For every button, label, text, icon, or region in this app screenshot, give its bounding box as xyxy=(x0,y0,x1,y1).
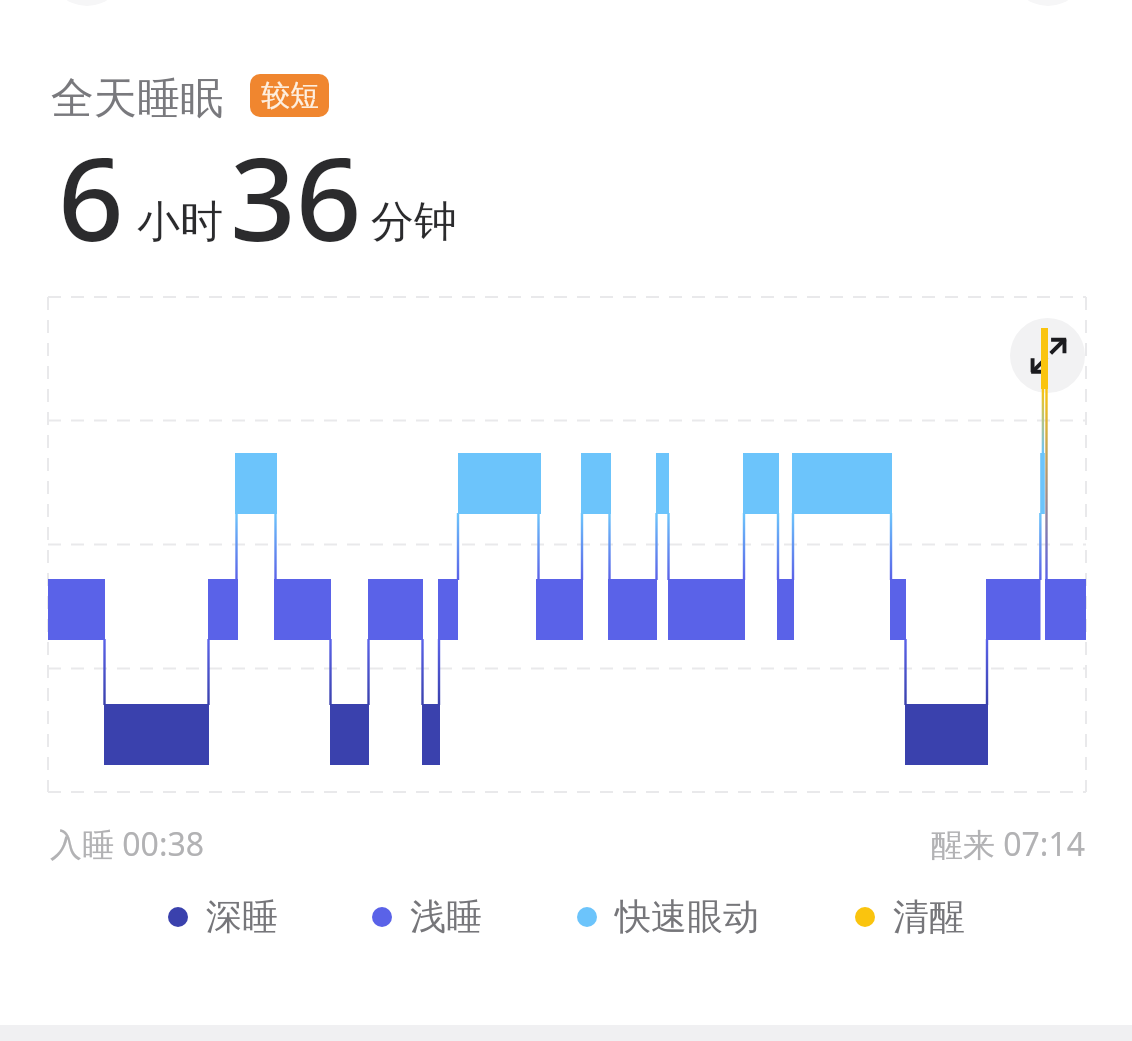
staticText: 清醒 xyxy=(893,894,965,939)
button[interactable]: 深睡 xyxy=(168,894,278,939)
staticText: 浅睡 xyxy=(410,894,482,939)
staticText: 较短 xyxy=(261,77,319,114)
staticText: 快速眼动 xyxy=(615,894,759,939)
staticText: 6 xyxy=(58,118,124,275)
button[interactable]: Expand chart xyxy=(1010,318,1085,393)
staticText: 36 xyxy=(230,118,362,275)
staticText: 全天睡眠 xyxy=(51,72,223,126)
button[interactable]: 快速眼动 xyxy=(577,894,759,939)
staticText: 分钟 xyxy=(371,195,457,249)
button[interactable]: 清醒 xyxy=(855,894,965,939)
staticText: 醒来 07:14 xyxy=(930,822,1085,866)
staticText: 入睡 00:38 xyxy=(50,822,205,866)
staticText: 小时 xyxy=(137,195,223,249)
button[interactable]: 较短 xyxy=(250,74,329,117)
button[interactable]: 浅睡 xyxy=(372,894,482,939)
staticText: 深睡 xyxy=(206,894,278,939)
